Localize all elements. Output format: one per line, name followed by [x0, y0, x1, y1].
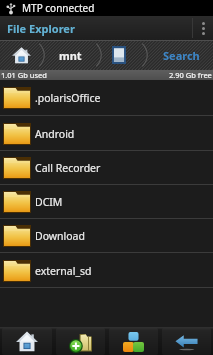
staticText: Call Recorder — [35, 161, 101, 175]
staticText: .polarisOffice — [35, 91, 101, 105]
staticText: 2.90 Gb free — [169, 70, 212, 80]
staticText: external_sd — [35, 264, 92, 278]
button[interactable]: DCIM — [0, 185, 213, 219]
button[interactable]: Search — [163, 48, 200, 63]
button[interactable]: Download — [0, 219, 213, 253]
button[interactable]: More options — [193, 16, 213, 40]
staticText: MTP connected — [22, 1, 95, 15]
button[interactable]: mnt — [59, 48, 82, 63]
button[interactable]: .polarisOffice — [0, 80, 213, 116]
staticText: File Explorer — [7, 21, 75, 36]
staticText: Android — [35, 127, 75, 141]
button[interactable]: Select — [109, 328, 158, 355]
staticText: Download — [35, 229, 85, 243]
button[interactable]: Home — [2, 328, 52, 355]
staticText: DCIM — [35, 195, 63, 209]
button[interactable]: external_sd — [0, 253, 213, 288]
button[interactable]: Home — [12, 47, 31, 64]
button[interactable]: Back — [162, 328, 211, 355]
button[interactable]: Call Recorder — [0, 151, 213, 185]
staticText: 1.01 Gb used — [1, 70, 47, 80]
button[interactable]: Android — [0, 116, 213, 151]
button[interactable]: Current folder — [112, 45, 126, 65]
button[interactable]: New folder — [56, 328, 105, 355]
